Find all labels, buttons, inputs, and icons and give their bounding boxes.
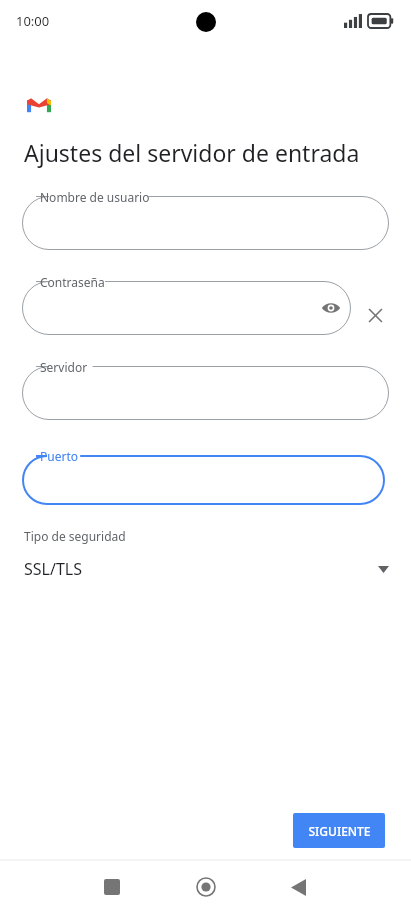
staticText: Puerto <box>40 448 78 464</box>
button[interactable]: Servidor <box>22 366 389 420</box>
staticText: Nombre de usuario <box>40 189 150 205</box>
staticText: Contraseña <box>40 274 105 290</box>
button[interactable]: Atrás <box>272 861 324 913</box>
staticText: 10:00 <box>16 12 50 30</box>
button[interactable]: Gmail <box>26 92 52 118</box>
staticText: Tipo de seguridad <box>24 528 126 544</box>
button[interactable]: SIGUIENTE <box>293 813 385 848</box>
staticText: SIGUIENTE <box>308 823 371 839</box>
staticText: SSL/TLS <box>24 558 82 580</box>
button[interactable]: Tipo de seguridad <box>0 528 411 590</box>
button[interactable]: Contraseña <box>22 281 351 335</box>
staticText: Servidor <box>40 359 88 375</box>
button[interactable]: Nombre de usuario <box>22 196 389 250</box>
button[interactable]: Inicio <box>180 861 232 913</box>
staticText: Ajustes del servidor de entrada <box>24 137 360 168</box>
button[interactable]: Puerto <box>22 455 385 505</box>
button[interactable]: Aplicaciones recientes <box>86 861 138 913</box>
button[interactable]: Borrar <box>360 300 390 330</box>
button[interactable]: Mostrar contraseña <box>316 293 346 323</box>
